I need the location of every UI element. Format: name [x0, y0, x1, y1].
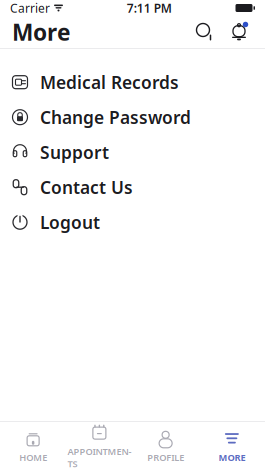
staticText: APPOINTMENTS	[67, 445, 131, 470]
button[interactable]: HOME	[0, 422, 66, 471]
button[interactable]: Contact Us	[0, 170, 265, 205]
staticText: More	[12, 17, 71, 47]
staticText: Contact Us	[40, 176, 133, 199]
staticText: 7:11 PM	[127, 0, 172, 16]
button[interactable]: Notifications	[225, 18, 253, 46]
button[interactable]: Change Password	[0, 100, 265, 135]
button[interactable]: Medical Records	[0, 65, 265, 100]
button[interactable]: APPOINTMENTS	[66, 422, 132, 471]
staticText: Support	[40, 141, 109, 164]
staticText: Carrier	[10, 0, 50, 16]
button[interactable]: Search	[191, 18, 219, 46]
staticText: HOME	[19, 451, 47, 464]
staticText: Medical Records	[40, 71, 179, 94]
button[interactable]: MORE	[199, 422, 265, 471]
staticText: PROFILE	[147, 451, 184, 464]
staticText: MORE	[218, 451, 245, 464]
button[interactable]: PROFILE	[132, 422, 199, 471]
staticText: Change Password	[40, 106, 191, 129]
button[interactable]: Support	[0, 135, 265, 170]
button[interactable]: Logout	[0, 205, 265, 240]
staticText: Logout	[40, 211, 100, 234]
